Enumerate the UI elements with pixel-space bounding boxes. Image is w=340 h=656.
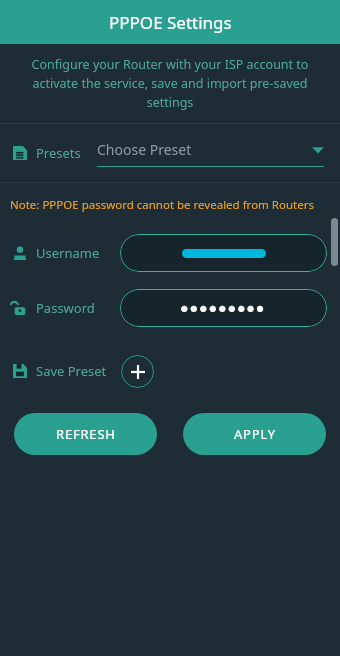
staticText: ●●●●●●●●● (181, 304, 267, 313)
button[interactable]: Presets (0, 124, 340, 182)
button[interactable]: APPLY (183, 413, 326, 455)
staticText: Choose Preset (97, 140, 312, 159)
button[interactable]: ●●●●●●●●● (120, 289, 327, 327)
staticText: APPLY (234, 425, 276, 443)
button[interactable]: Add preset (121, 355, 154, 388)
staticText: Save Preset (36, 362, 107, 380)
staticText: PPPOE Settings (109, 11, 232, 34)
staticText: Username (36, 244, 100, 262)
button[interactable]: REFRESH (14, 413, 157, 455)
staticText: REFRESH (56, 425, 116, 443)
staticText: Configure your Router with your ISP acco… (18, 56, 322, 111)
staticText: Presets (36, 144, 81, 162)
staticText: Password (36, 299, 95, 317)
button[interactable] (120, 234, 327, 272)
staticText: Note: PPPOE password cannot be revealed … (10, 197, 314, 213)
